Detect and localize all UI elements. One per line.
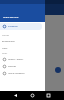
button[interactable]: Trash [0,45,45,51]
button[interactable]: Back [11,91,20,100]
button[interactable]: Help & Feedback [0,70,42,77]
staticText: Bookmarked [2,40,15,43]
button[interactable]: Home [28,91,37,100]
button[interactable]: Import / Export [0,55,42,63]
staticText: Trash [2,47,8,50]
staticText: Help & Feedback [8,72,25,75]
staticText: Import / Export [8,58,24,61]
button[interactable]: Settings [0,63,42,70]
staticText: Make the List [3,15,19,18]
button[interactable]: Add list [55,67,61,73]
button[interactable]: Shopping [0,23,42,30]
button[interactable]: Recent apps [44,91,53,100]
staticText: Settings [8,65,16,68]
staticText: Storage [2,34,9,37]
staticText: Shopping [8,25,18,28]
staticText: Other [2,52,8,55]
button[interactable]: Bookmarked [0,38,45,45]
